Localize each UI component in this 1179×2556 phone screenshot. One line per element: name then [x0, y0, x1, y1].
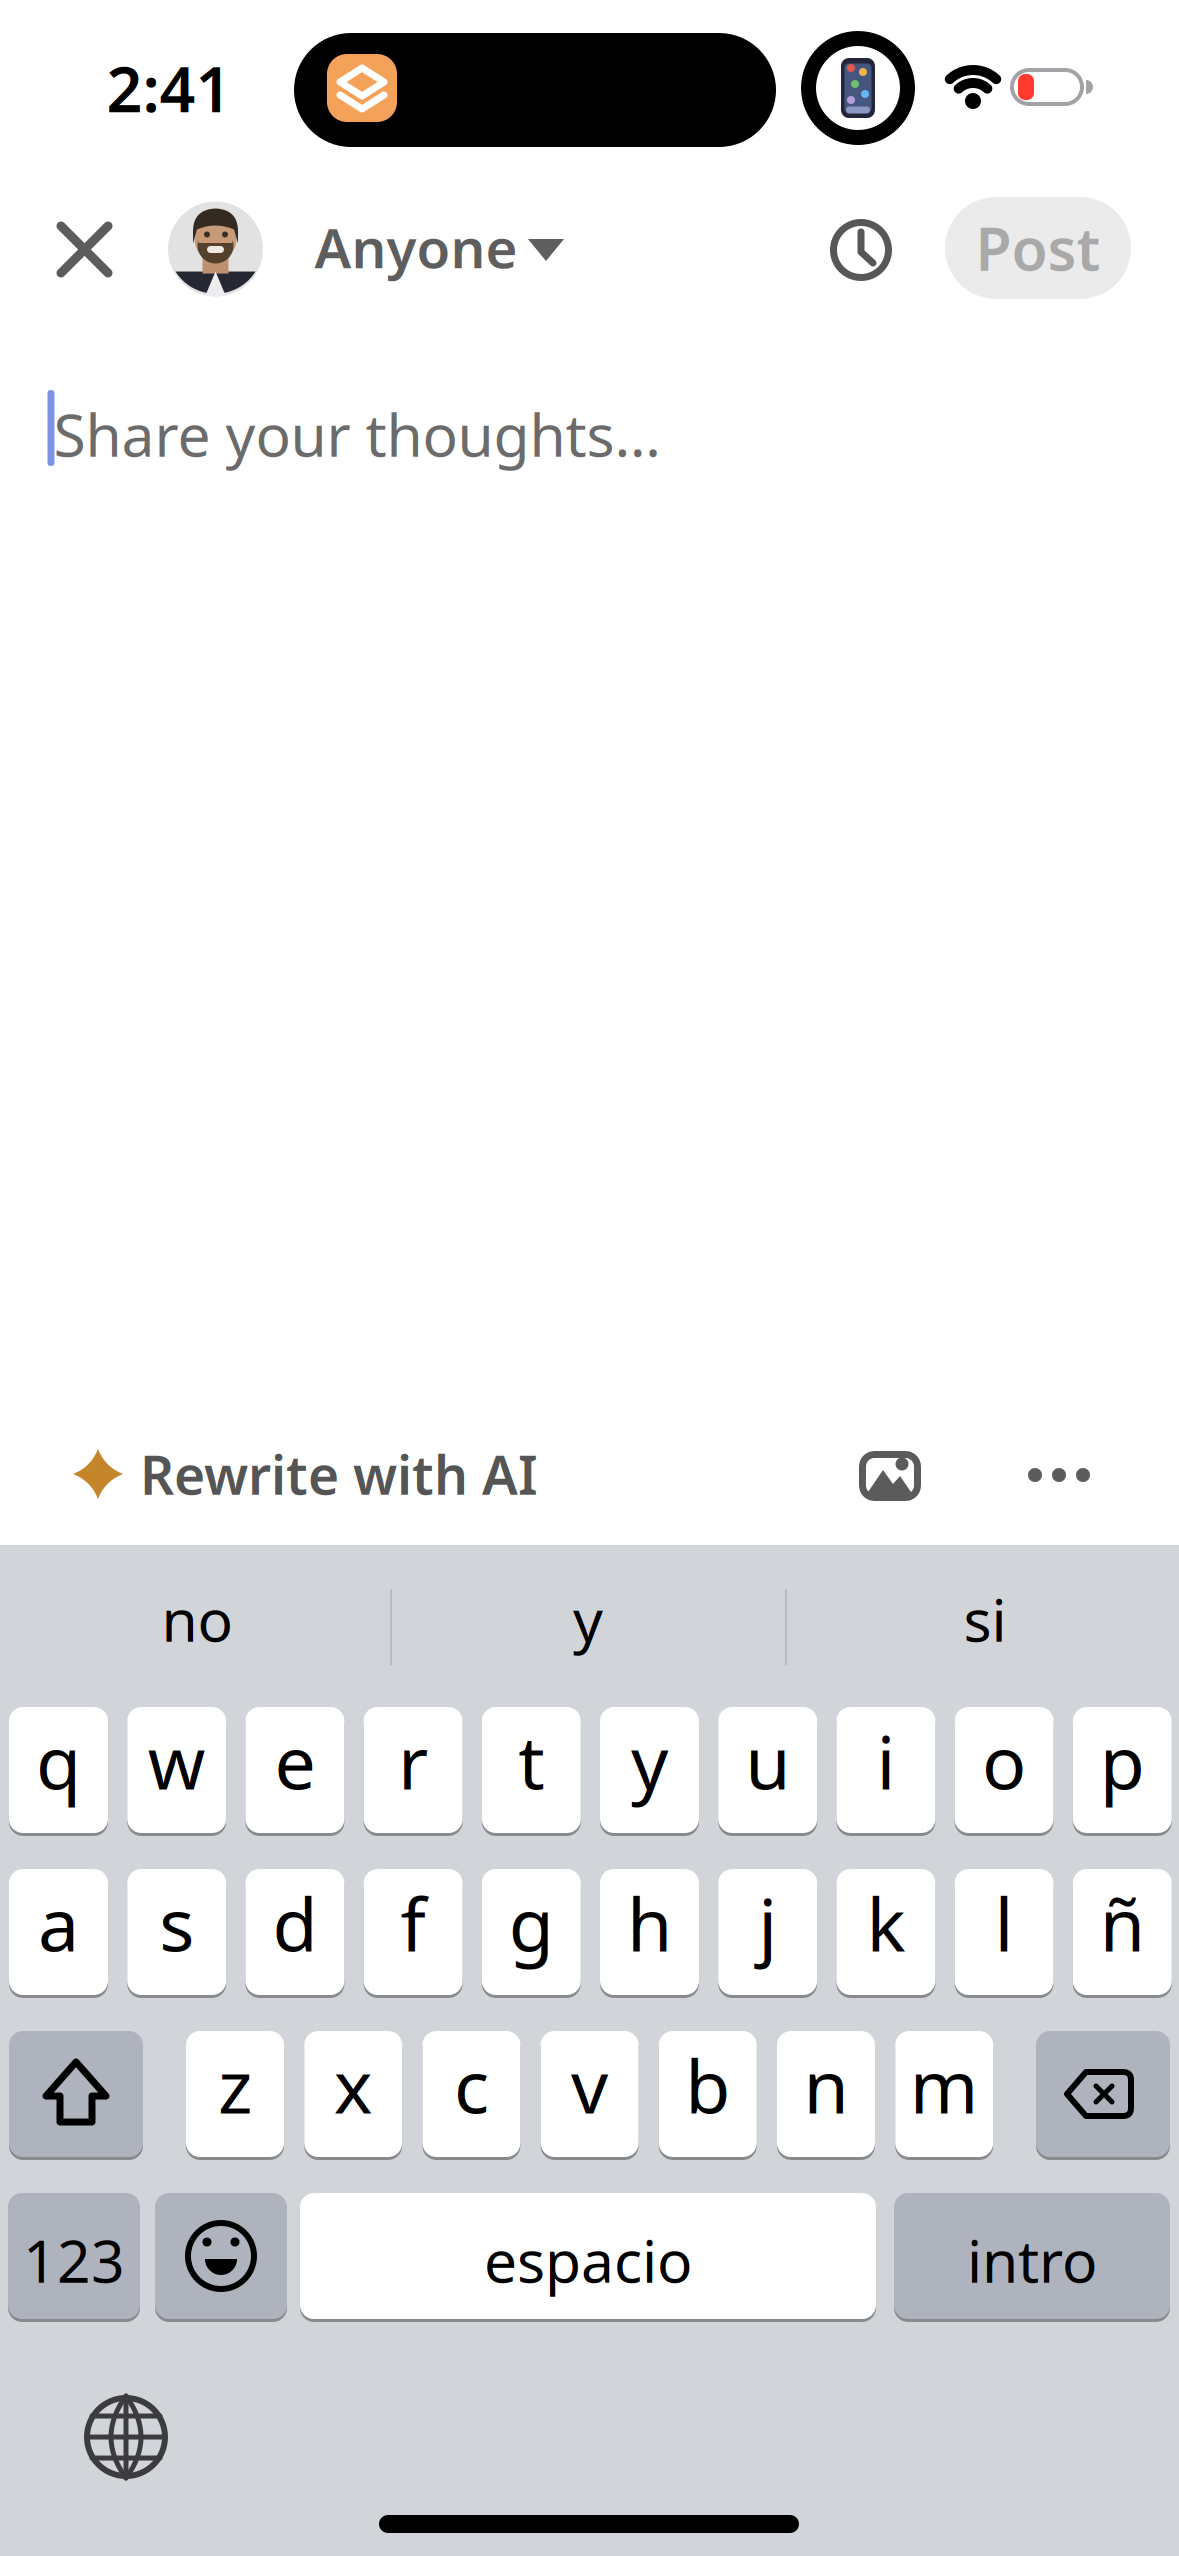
staticText: 123 — [23, 2221, 125, 2299]
button[interactable]: p — [1073, 1705, 1172, 1835]
button[interactable]: b — [659, 2029, 757, 2159]
button[interactable]: d — [245, 1867, 344, 1997]
staticText: m — [910, 2036, 979, 2134]
button[interactable]: g — [482, 1867, 581, 1997]
staticText: u — [745, 1712, 790, 1810]
button[interactable] — [155, 2191, 287, 2321]
staticText: l — [995, 1874, 1014, 1972]
button[interactable]: c — [422, 2029, 520, 2159]
button[interactable]: 123 — [8, 2191, 140, 2321]
button[interactable]: no — [12, 1549, 382, 1689]
button[interactable]: n — [777, 2029, 875, 2159]
staticText: ñ — [1100, 1874, 1145, 1972]
button[interactable]: si — [800, 1549, 1170, 1689]
staticText: y — [573, 1580, 603, 1658]
staticText: q — [36, 1712, 81, 1810]
staticText: o — [982, 1712, 1026, 1810]
button[interactable]: Rewrite with AI — [73, 1426, 533, 1522]
staticText: 2:41 — [106, 46, 231, 130]
button[interactable]: espacio — [300, 2191, 876, 2321]
button[interactable]: a — [9, 1867, 108, 1997]
staticText: e — [274, 1712, 315, 1810]
button[interactable]: v — [541, 2029, 639, 2159]
button[interactable]: r — [364, 1705, 463, 1835]
button[interactable]: m — [895, 2029, 993, 2159]
staticText: h — [627, 1874, 672, 1972]
button[interactable]: l — [955, 1867, 1054, 1997]
button[interactable]: u — [718, 1705, 817, 1835]
staticText: j — [758, 1874, 777, 1972]
staticText: si — [963, 1580, 1006, 1658]
staticText: t — [518, 1712, 544, 1810]
button[interactable]: intro — [894, 2191, 1170, 2321]
button[interactable] — [58, 223, 111, 276]
staticText: c — [454, 2036, 489, 2134]
staticText: Post — [975, 209, 1100, 287]
button[interactable]: i — [836, 1705, 935, 1835]
staticText: x — [334, 2036, 373, 2134]
staticText: v — [571, 2036, 608, 2134]
button[interactable]: w — [127, 1705, 226, 1835]
staticText: r — [398, 1712, 428, 1810]
staticText: Anyone — [314, 211, 517, 283]
staticText: d — [272, 1874, 317, 1972]
button[interactable]: o — [955, 1705, 1054, 1835]
button[interactable] — [852, 1432, 928, 1520]
button[interactable]: t — [482, 1705, 581, 1835]
button[interactable]: ñ — [1073, 1867, 1172, 1997]
button[interactable] — [1023, 1453, 1095, 1497]
staticText: k — [866, 1874, 905, 1972]
staticText: z — [218, 2036, 252, 2134]
button[interactable]: Post — [945, 197, 1131, 299]
button[interactable]: y — [600, 1705, 699, 1835]
staticText: n — [803, 2036, 848, 2134]
staticText: Share your thoughts… — [53, 395, 660, 473]
button[interactable] — [84, 2395, 168, 2479]
button[interactable] — [830, 219, 892, 281]
staticText: y — [631, 1712, 668, 1810]
button[interactable]: Anyone — [168, 194, 588, 304]
staticText: w — [148, 1712, 206, 1810]
button[interactable] — [9, 2029, 143, 2159]
button[interactable]: h — [600, 1867, 699, 1997]
button[interactable]: z — [186, 2029, 284, 2159]
staticText: no — [161, 1580, 232, 1658]
button[interactable]: e — [245, 1705, 344, 1835]
staticText: a — [38, 1874, 79, 1972]
staticText: g — [509, 1874, 554, 1972]
staticText: Rewrite with AI — [140, 1439, 538, 1509]
button[interactable]: q — [9, 1705, 108, 1835]
staticText: f — [401, 1874, 426, 1972]
staticText: i — [876, 1712, 895, 1810]
staticText: s — [159, 1874, 194, 1972]
staticText: espacio — [484, 2221, 692, 2299]
staticText: b — [685, 2036, 730, 2134]
button[interactable]: f — [364, 1867, 463, 1997]
button[interactable]: x — [304, 2029, 402, 2159]
button[interactable]: s — [127, 1867, 226, 1997]
staticText: p — [1100, 1712, 1145, 1810]
button[interactable] — [1036, 2029, 1170, 2159]
button[interactable]: k — [836, 1867, 935, 1997]
staticText: intro — [967, 2221, 1097, 2299]
button[interactable]: y — [403, 1549, 773, 1689]
button[interactable]: j — [718, 1867, 817, 1997]
